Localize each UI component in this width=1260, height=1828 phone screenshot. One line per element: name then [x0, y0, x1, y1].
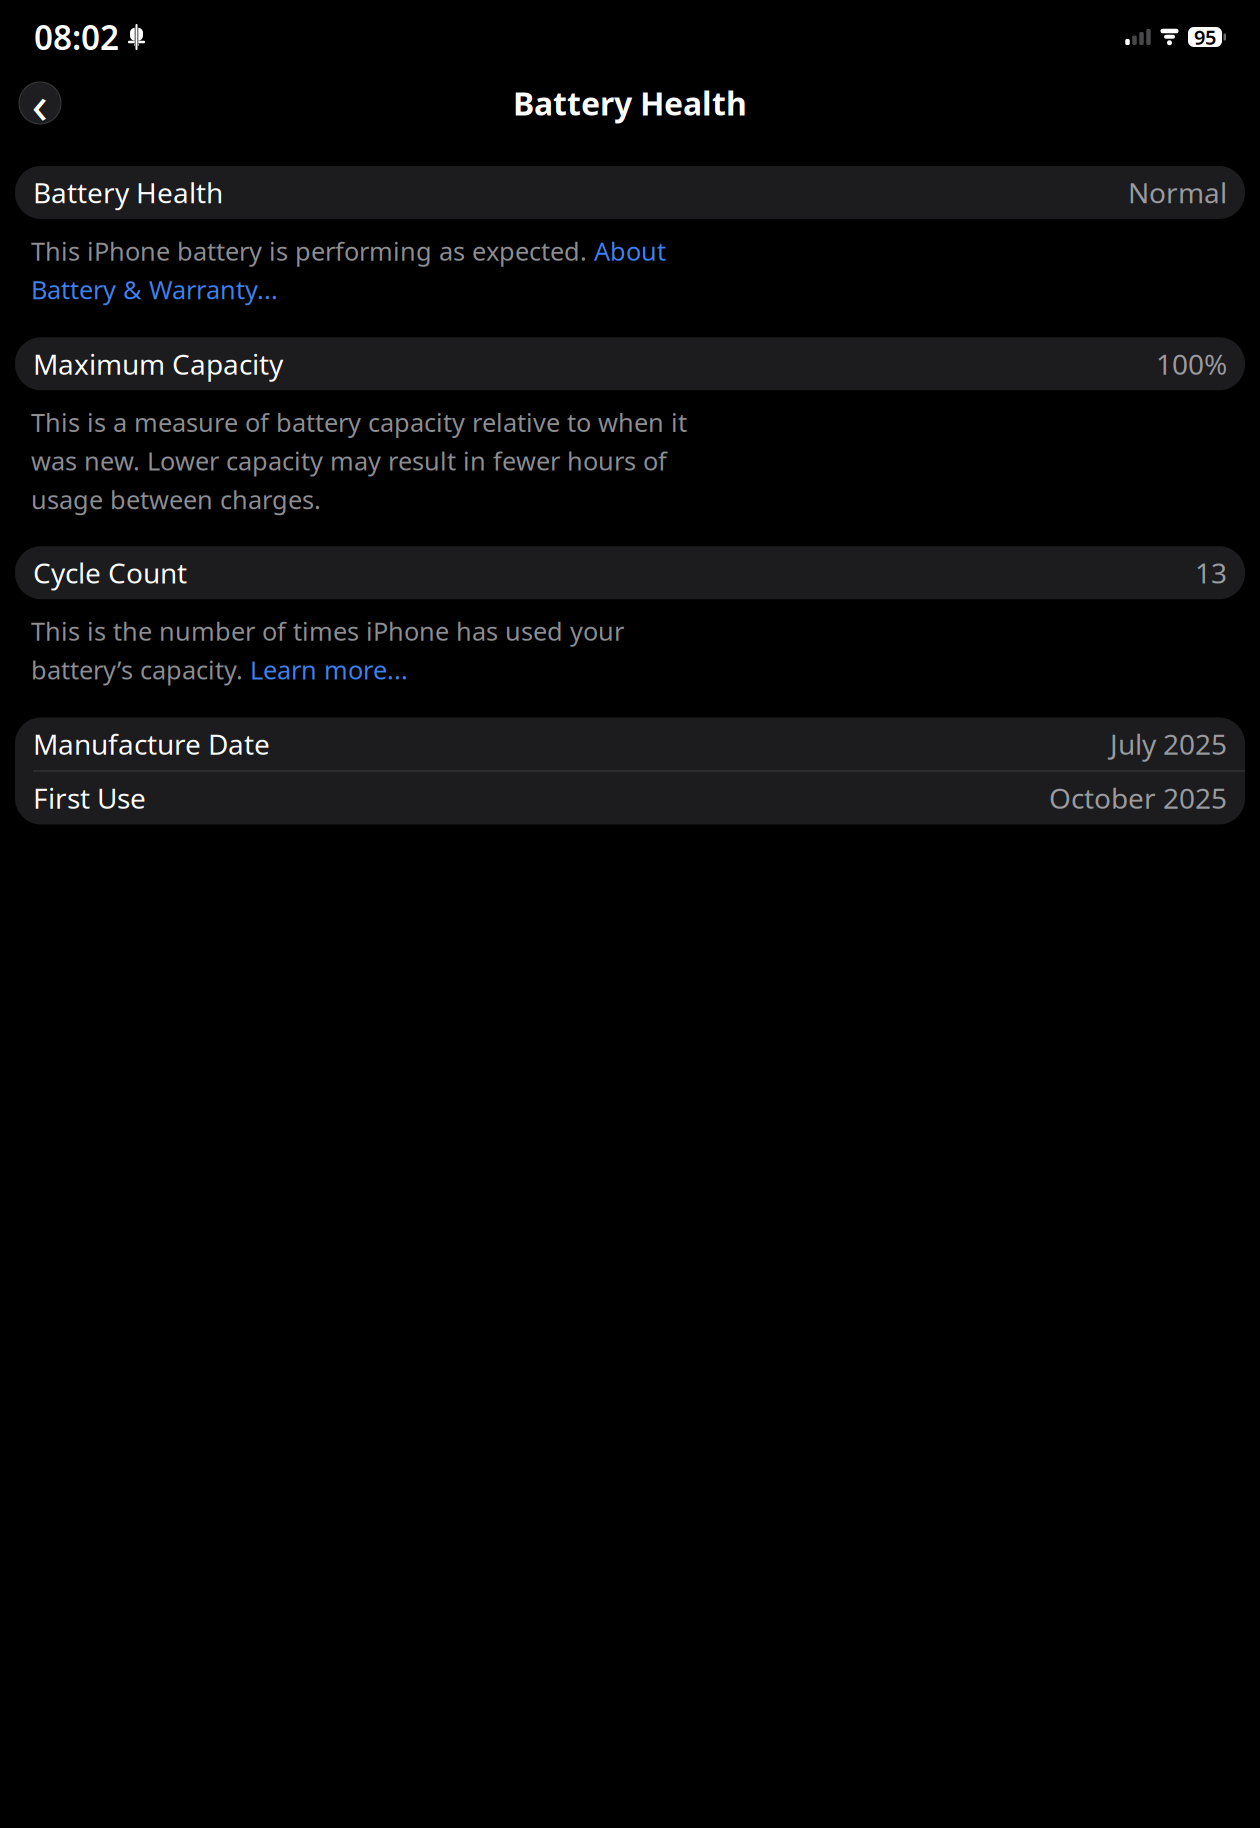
staticText: 13: [1195, 554, 1227, 591]
staticText: July 2025: [1110, 725, 1227, 763]
staticText: Maximum Capacity: [33, 345, 283, 382]
button[interactable]: Manufacture Date: [15, 717, 1245, 770]
staticText: 100%: [1156, 345, 1227, 382]
staticText: This is the number of times iPhone has u…: [31, 614, 624, 648]
staticText: 95: [1194, 24, 1216, 50]
staticText: was new. Lower capacity may result in fe…: [31, 444, 667, 477]
staticText: October 2025: [1049, 779, 1227, 817]
staticText: Manufacture Date: [33, 725, 270, 763]
button[interactable]: First Use: [15, 771, 1245, 824]
button[interactable]: Maximum Capacity: [15, 337, 1245, 390]
staticText: Learn more...: [250, 653, 408, 686]
button[interactable]: Cycle Count: [15, 546, 1245, 599]
staticText: This is a measure of battery capacity re…: [31, 405, 687, 439]
staticText: usage between charges.: [31, 483, 321, 516]
staticText: battery’s capacity.: [31, 653, 250, 686]
staticText: Normal: [1128, 174, 1227, 211]
button[interactable]: Battery Health: [15, 166, 1245, 219]
staticText: ‹: [31, 68, 48, 138]
staticText: First Use: [33, 779, 146, 817]
staticText: About: [594, 234, 666, 268]
staticText: Cycle Count: [33, 554, 187, 591]
button[interactable]: Back: [19, 82, 61, 124]
staticText: Battery & Warranty...: [31, 273, 278, 306]
staticText: This iPhone battery is performing as exp…: [31, 234, 594, 268]
staticText: Battery Health: [33, 174, 223, 211]
staticText: Battery Health: [513, 82, 747, 124]
staticText: 08:02: [34, 15, 119, 59]
